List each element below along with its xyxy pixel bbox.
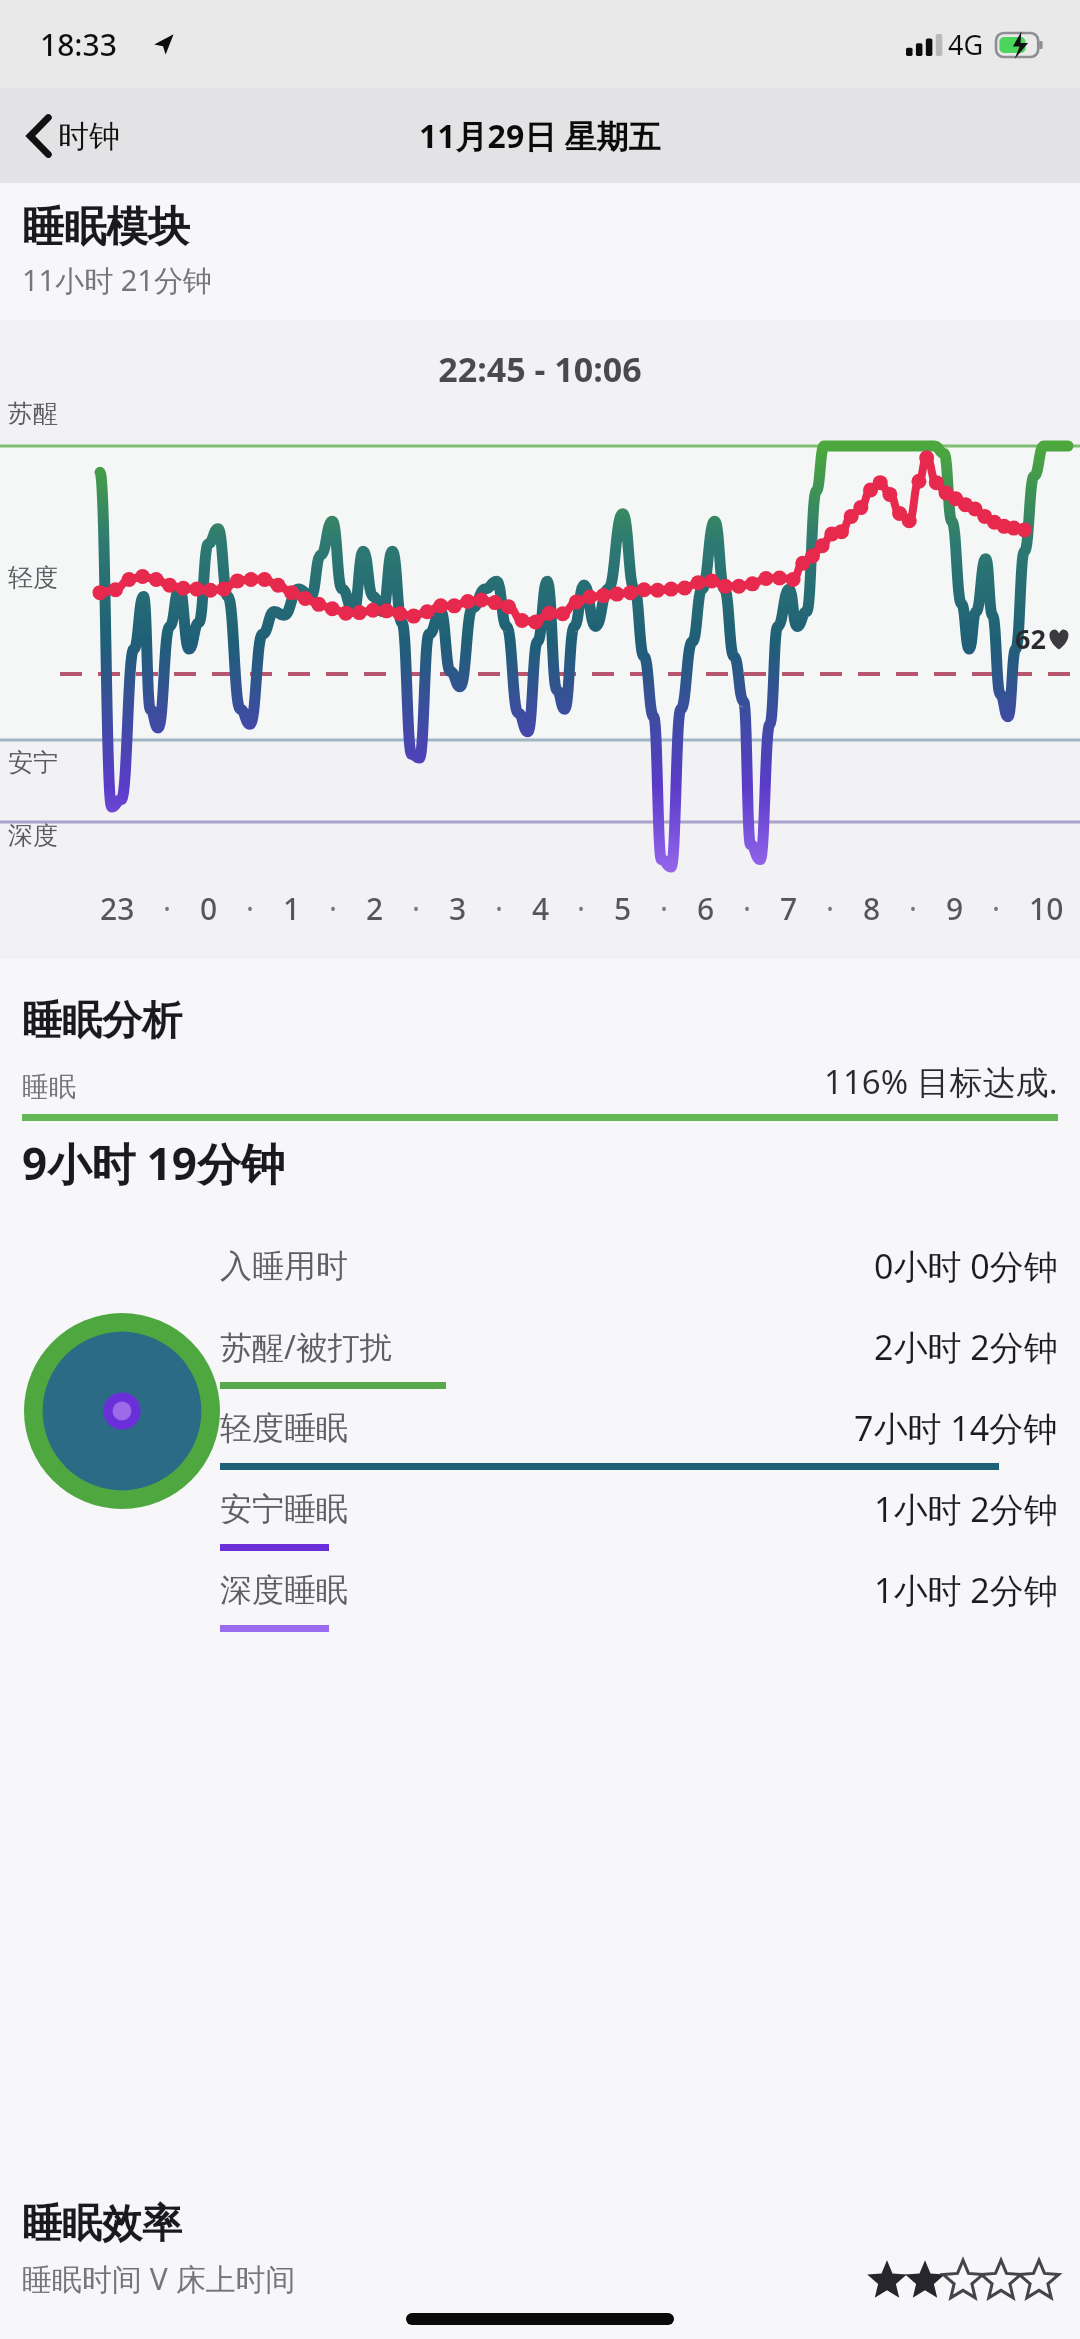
staticText: 轻度睡眠 [220, 1408, 348, 1448]
staticText: 睡眠分析 [22, 995, 182, 1045]
staticText: 7小时 14分钟 [854, 1405, 1058, 1451]
staticText: · [826, 888, 835, 929]
button[interactable]: 苏醒/被打扰 [220, 1308, 1058, 1389]
staticText: · [495, 888, 504, 929]
staticText: 1小时 2分钟 [874, 1486, 1058, 1532]
staticText: · [660, 888, 669, 929]
staticText: 入睡用时 [220, 1246, 348, 1286]
staticText: 9 [946, 888, 964, 929]
staticText: · [329, 888, 338, 929]
staticText: · [992, 888, 1001, 929]
staticText: · [909, 888, 918, 929]
button[interactable]: 轻度睡眠 [220, 1389, 1058, 1470]
staticText: 116% 目标达成. [824, 1059, 1058, 1104]
staticText: 10 [1029, 888, 1064, 929]
staticText: 6 [697, 888, 715, 929]
staticText: · [577, 888, 586, 929]
staticText: 0 [200, 888, 218, 929]
staticText: · [246, 888, 255, 929]
staticText: 5 [614, 888, 632, 929]
staticText: · [743, 888, 752, 929]
staticText: 8 [863, 888, 881, 929]
staticText: · [163, 888, 172, 929]
staticText: 9小时 19分钟 [22, 1133, 285, 1193]
staticText: 11月29日 星期五 [419, 114, 661, 158]
staticText: 22:45 - 10:06 [0, 346, 1080, 392]
staticText: 18:33 [40, 24, 117, 65]
staticText: 时钟 [58, 117, 120, 156]
staticText: 睡眠时间 V 床上时间 [22, 2258, 296, 2299]
button[interactable]: 安宁睡眠 [220, 1470, 1058, 1551]
staticText: 2 [366, 888, 384, 929]
button[interactable]: 入睡用时 [220, 1227, 1058, 1308]
staticText: 睡眠 [22, 1070, 76, 1104]
staticText: 深度睡眠 [220, 1570, 348, 1610]
staticText: 4G [948, 26, 984, 63]
button[interactable]: 深度睡眠 [220, 1551, 1058, 1632]
staticText: 7 [780, 888, 798, 929]
staticText: 0小时 0分钟 [874, 1243, 1058, 1289]
staticText: 1小时 2分钟 [874, 1567, 1058, 1613]
staticText: 苏醒/被打扰 [220, 1325, 392, 1369]
staticText: · [412, 888, 421, 929]
staticText: 4 [532, 888, 550, 929]
staticText: 3 [449, 888, 467, 929]
staticText: 1 [283, 888, 301, 929]
staticText: 睡眠效率 [22, 2198, 182, 2248]
staticText: 深度 [8, 820, 58, 851]
staticText: 安宁睡眠 [220, 1489, 348, 1529]
staticText: 苏醒 [8, 398, 58, 429]
staticText: 2小时 2分钟 [874, 1324, 1058, 1370]
staticText: 23 [100, 888, 135, 929]
staticText: 轻度 [8, 562, 58, 593]
button[interactable]: 时钟 [22, 108, 126, 164]
staticText: 62 [1015, 620, 1046, 657]
staticText: 安宁 [8, 747, 58, 778]
staticText: 睡眠模块 [22, 201, 190, 254]
staticText: 11小时 21分钟 [22, 260, 212, 300]
